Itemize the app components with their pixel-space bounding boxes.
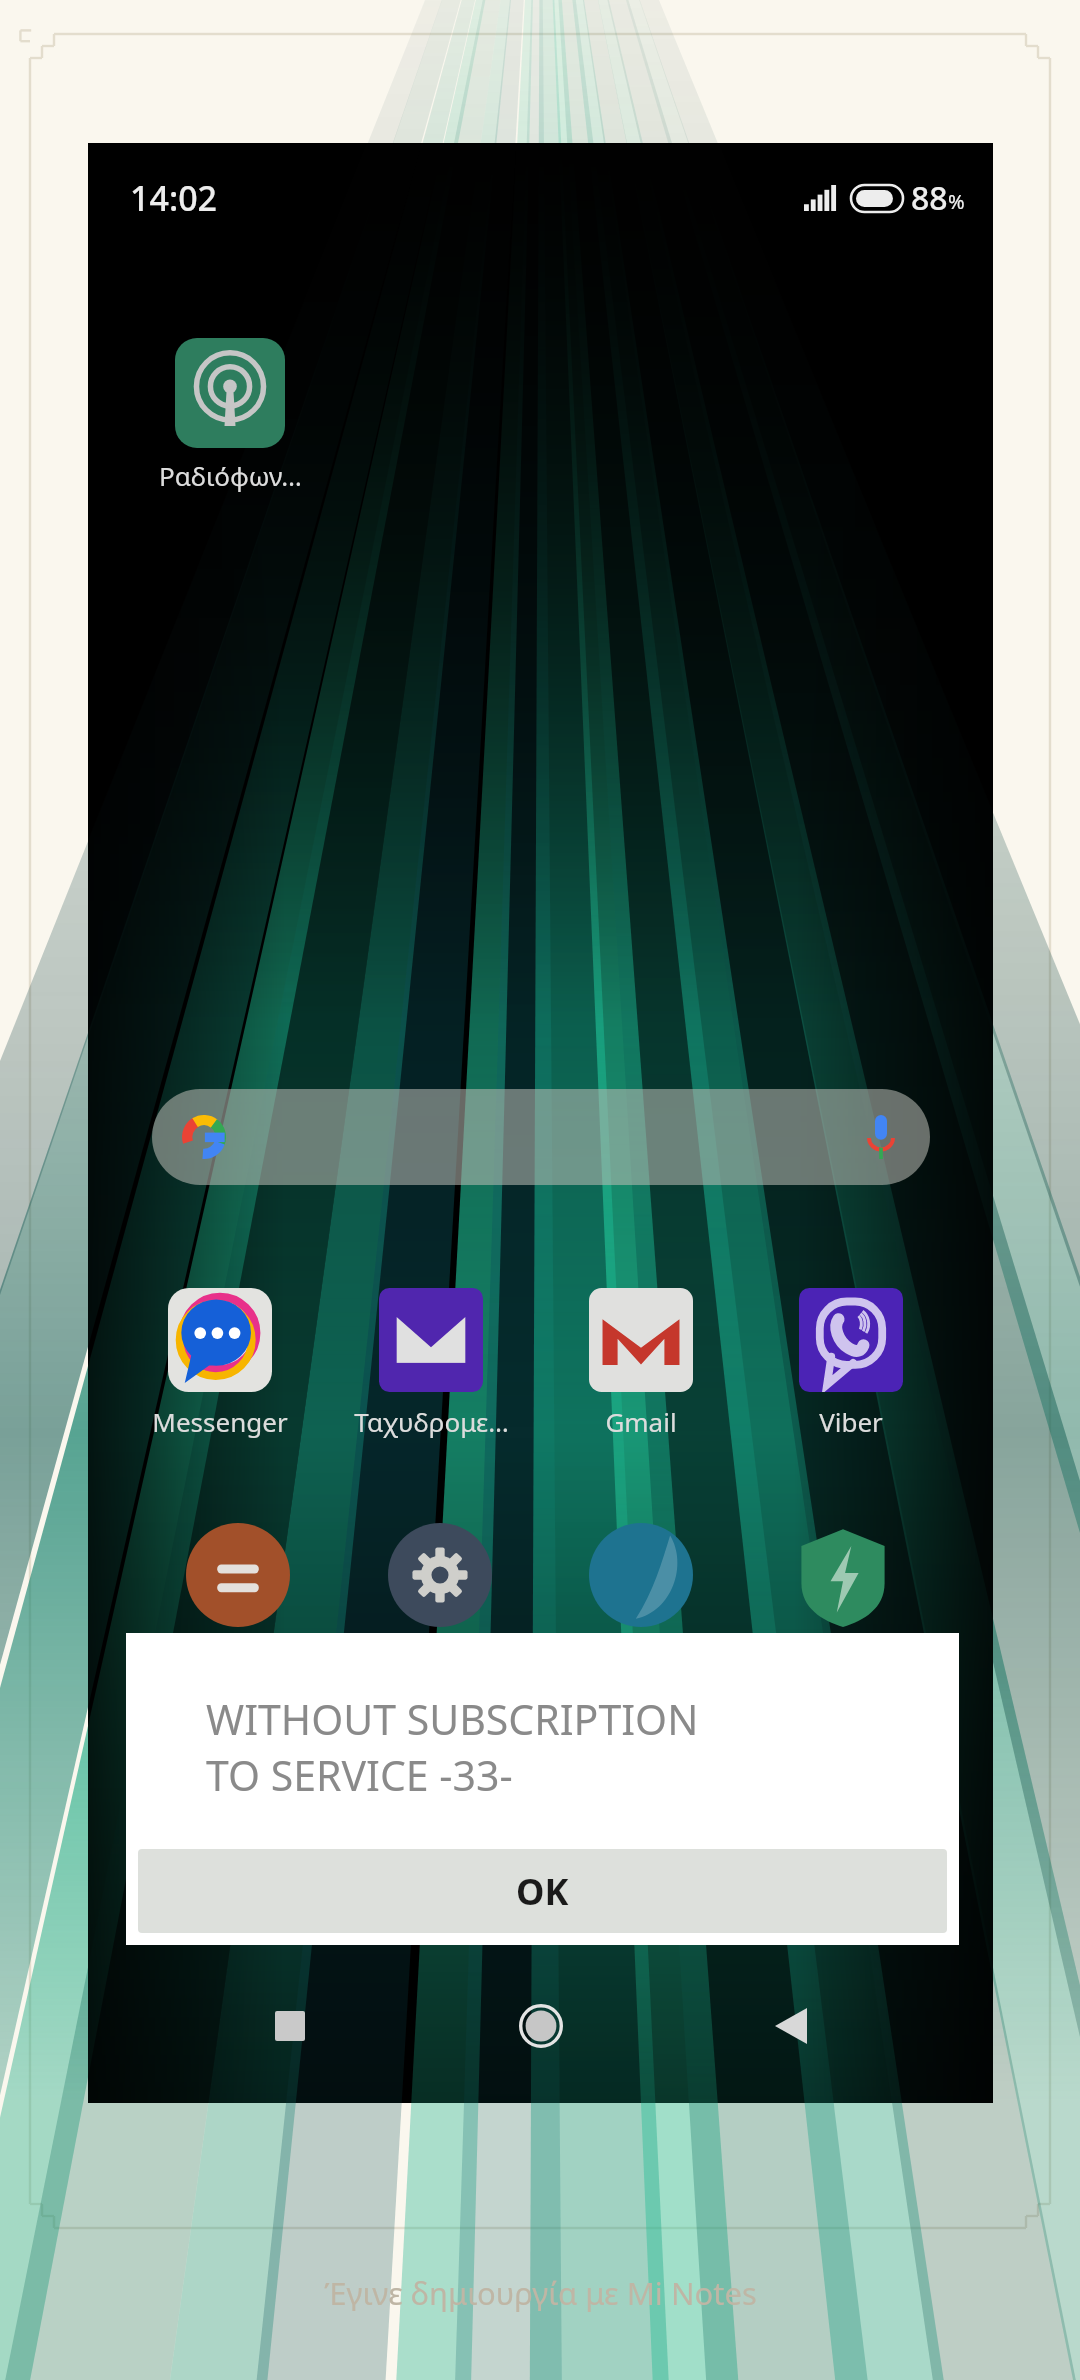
button[interactable]: Ραδιόφων…: [150, 338, 310, 493]
button[interactable]: Back: [743, 1978, 839, 2074]
staticText: WITHOUT SUBSCRIPTION: [206, 1691, 699, 1747]
button[interactable]: Viber: [771, 1288, 931, 1439]
staticText: %: [948, 188, 965, 215]
staticText: 88: [911, 176, 948, 220]
button[interactable]: Messenger: [140, 1288, 300, 1439]
staticText: Έγινε δημιουργία με Mi Notes: [324, 2272, 757, 2314]
button[interactable]: Notes: [186, 1523, 290, 1627]
staticText: OK: [516, 1867, 569, 1916]
staticText: 14:02: [130, 175, 218, 221]
staticText: TO SERVICE -33-: [206, 1747, 513, 1803]
button[interactable]: Security: [791, 1523, 895, 1627]
button[interactable]: Home: [493, 1978, 589, 2074]
staticText: Viber: [819, 1404, 883, 1439]
button[interactable]: OK: [138, 1849, 947, 1933]
button[interactable]: Recents: [242, 1978, 338, 2074]
button[interactable]: Browser: [589, 1523, 693, 1627]
staticText: Ραδιόφων…: [159, 458, 302, 493]
staticText: Ταχυδρομε…: [354, 1404, 509, 1439]
staticText: Gmail: [605, 1404, 677, 1439]
button[interactable]: Gmail: [561, 1288, 721, 1439]
button[interactable]: Google search: [152, 1089, 930, 1185]
button[interactable]: Settings: [388, 1523, 492, 1627]
staticText: Messenger: [152, 1404, 288, 1439]
button[interactable]: Ταχυδρομε…: [351, 1288, 511, 1439]
